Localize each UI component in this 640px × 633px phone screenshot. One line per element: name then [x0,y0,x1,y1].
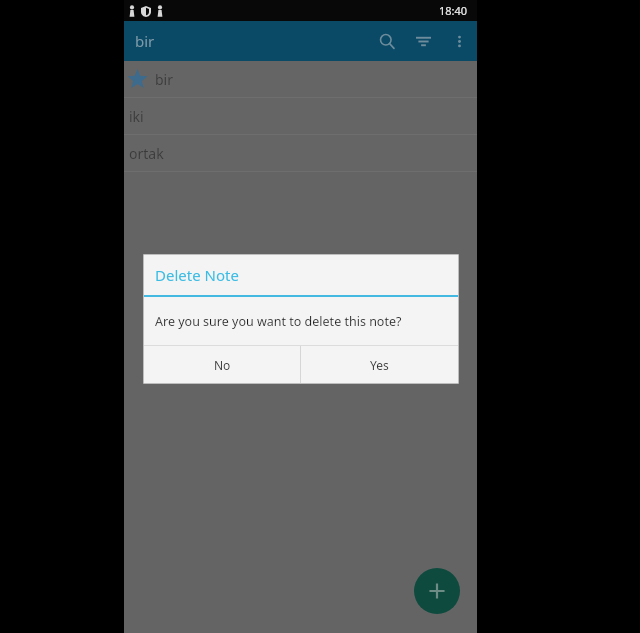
staticText: 18:40 [439,3,468,18]
staticText: iki [129,107,144,126]
staticText: bir [155,70,174,89]
button[interactable]: More options [441,21,477,61]
staticText: Yes [370,357,389,373]
button[interactable]: Add note [414,568,460,614]
button[interactable]: Sort [405,21,441,61]
staticText: ortak [129,144,164,163]
staticText: Are you sure you want to delete this not… [155,313,402,330]
staticText: bir [135,31,155,51]
button[interactable]: bir [124,61,477,97]
staticText: Delete Note [155,265,239,285]
button[interactable]: Yes [301,346,458,383]
staticText: No [214,357,231,373]
button[interactable]: No [144,346,300,383]
button[interactable]: Search [369,21,405,61]
